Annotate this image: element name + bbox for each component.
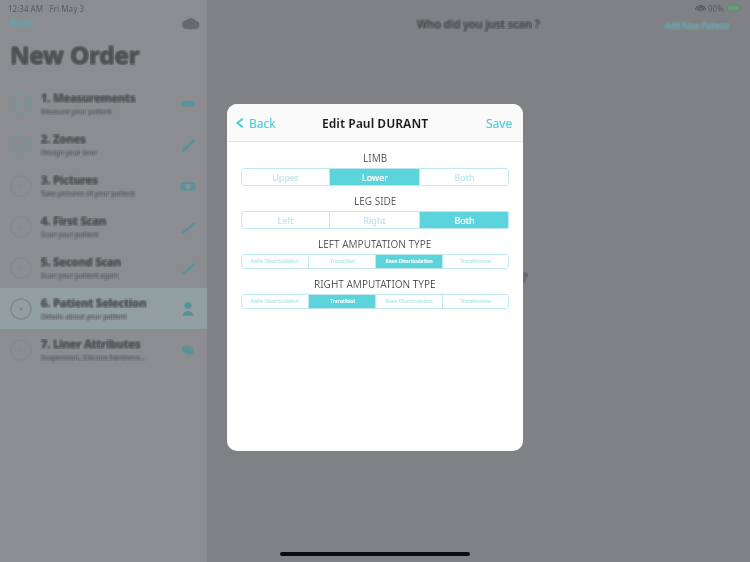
staticText: 6. Patient Selection	[40, 294, 146, 309]
staticText: Transtibial	[330, 258, 355, 265]
staticText: Add New Patient	[666, 20, 730, 31]
button[interactable]: Knee Disarticulation	[376, 294, 442, 309]
staticText: Add New Patient	[666, 21, 730, 32]
staticText: Details about your patient	[40, 311, 126, 321]
staticText: Who did you just scan ?	[418, 17, 541, 32]
staticText: 2. Zones	[40, 132, 85, 147]
staticText: right to add a new patient ?	[358, 267, 529, 285]
button[interactable]: Knee Disarticulation	[376, 254, 442, 269]
staticText: Scan your patient	[40, 229, 98, 239]
staticText: Add New Patient	[666, 19, 730, 30]
staticText: New Order	[9, 39, 139, 72]
staticText: Scan your patient	[42, 231, 100, 241]
button[interactable]: Transfemoral	[443, 254, 509, 269]
button[interactable]: Ankle Disarticulation	[241, 294, 308, 309]
staticText: Add New Patient	[666, 21, 730, 32]
staticText: 7. Liner Attributes	[40, 337, 140, 352]
staticText: Details about your patient	[40, 311, 126, 321]
staticText: Scan your patient	[40, 229, 98, 239]
staticText: Save	[486, 115, 513, 131]
staticText: 2. Zones	[40, 132, 85, 147]
staticText: right to add a new patient ?	[358, 269, 529, 287]
staticText: 3. Pictures	[41, 172, 98, 187]
button[interactable]: Transtibial	[309, 254, 375, 269]
staticText: 1. Measurements	[40, 89, 135, 104]
staticText: Back	[11, 15, 34, 29]
staticText: Back	[11, 15, 34, 29]
staticText: right to add a new patient ?	[357, 267, 528, 285]
staticText: Back	[9, 15, 32, 29]
staticText: 4. First Scan	[42, 212, 108, 227]
staticText: Take pictures of your patient	[42, 190, 136, 200]
staticText: 2. Zones	[40, 132, 85, 147]
staticText: Suspension, Silicone hardness...	[42, 354, 147, 364]
staticText: Measure your patient	[42, 106, 113, 116]
button[interactable]: 2. Zones	[0, 124, 207, 165]
button[interactable]: Back	[234, 115, 276, 131]
staticText: Ankle Disarticulation	[250, 298, 299, 305]
button[interactable]: Both	[420, 211, 509, 229]
button[interactable]: Save	[486, 115, 513, 131]
staticText: 2. Zones	[41, 132, 86, 147]
staticText: Add New Patient	[666, 20, 730, 31]
button[interactable]: 1. Measurements	[0, 83, 207, 124]
staticText: right to add a new patient ?	[358, 267, 529, 285]
staticText: Details about your patient	[40, 313, 126, 323]
staticText: 1. Measurements	[40, 91, 135, 106]
staticText: 6. Patient Selection	[42, 295, 148, 310]
button[interactable]: Lower	[330, 168, 419, 186]
button[interactable]: Transfemoral	[443, 294, 509, 309]
staticText: Both	[454, 214, 475, 226]
staticText: New Order	[9, 39, 139, 72]
staticText: Back	[9, 16, 32, 30]
staticText: 4. First Scan	[40, 212, 106, 227]
staticText: 2. Zones	[42, 132, 87, 147]
staticText: Take pictures of your patient	[42, 188, 136, 198]
staticText: Transtibial	[330, 298, 355, 305]
staticText: Design your liner	[40, 147, 97, 157]
button[interactable]: 5. Second Scan	[0, 247, 207, 288]
staticText: Add New Patient	[665, 19, 729, 30]
staticText: 3. Pictures	[42, 173, 99, 188]
button[interactable]: Both	[420, 168, 509, 186]
staticText: 4. First Scan	[40, 213, 106, 228]
staticText: 1. Measurements	[42, 91, 137, 106]
staticText: Scan your patient again	[40, 270, 118, 280]
staticText: Details about your patient	[42, 313, 128, 323]
staticText: Add New Patient	[665, 19, 729, 30]
staticText: Back	[249, 115, 276, 131]
staticText: Scan your patient	[40, 229, 98, 239]
staticText: Details about your patient	[40, 313, 126, 323]
staticText: 90%	[708, 3, 724, 14]
staticText: right to add a new patient ?	[356, 267, 527, 285]
staticText: Add New Patient	[664, 19, 728, 30]
staticText: 7. Liner Attributes	[42, 337, 142, 352]
button[interactable]: 6. Patient Selection	[0, 288, 207, 329]
button[interactable]: Left	[241, 211, 329, 229]
staticText: Measure your patient	[41, 108, 112, 118]
staticText: 5. Second Scan	[40, 253, 120, 268]
button[interactable]: Upper	[241, 168, 329, 186]
staticText: Suspension, Silicone hardness...	[40, 352, 145, 362]
button[interactable]: 7. Liner Attributes	[0, 329, 207, 370]
staticText: 7. Liner Attributes	[40, 335, 140, 350]
staticText: 4. First Scan	[40, 214, 106, 229]
staticText: 3. Pictures	[40, 173, 97, 188]
staticText: right to add a new patient ?	[357, 269, 528, 287]
staticText: Measure your patient	[42, 107, 113, 117]
button[interactable]: 3. Pictures	[0, 165, 207, 206]
staticText: Scan your patient again	[40, 272, 118, 282]
button[interactable]: Ankle Disarticulation	[241, 254, 308, 269]
staticText: 2. Zones	[42, 131, 87, 146]
button[interactable]: Right	[330, 211, 419, 229]
staticText: Take pictures of your patient	[41, 190, 135, 200]
staticText: Scan your patient	[42, 231, 100, 241]
staticText: 1. Measurements	[42, 90, 137, 105]
staticText: 1. Measurements	[42, 89, 137, 104]
staticText: Details about your patient	[40, 313, 126, 323]
staticText: Back	[10, 15, 33, 29]
staticText: Take pictures of your patient	[42, 189, 136, 199]
button[interactable]: Transtibial	[309, 294, 375, 309]
staticText: 2. Zones	[42, 132, 87, 147]
button[interactable]: 4. First Scan	[0, 206, 207, 247]
